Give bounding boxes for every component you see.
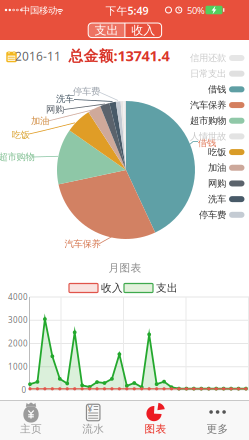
staticText: 停车费 <box>199 209 226 221</box>
staticText: 吃饭 <box>11 129 29 141</box>
staticText: 0 <box>21 385 26 395</box>
staticText: 更多 <box>207 422 229 435</box>
button[interactable]: 支出 <box>124 281 178 294</box>
staticText: 日常支出 <box>190 68 226 79</box>
staticText: 1000 <box>8 361 28 372</box>
button[interactable]: 洗车 <box>154 193 244 205</box>
staticText: 加油 <box>31 115 49 127</box>
button[interactable]: 借钱 <box>154 84 244 95</box>
button[interactable]: 加油 <box>154 162 244 173</box>
staticText: 收入 <box>131 23 155 38</box>
staticText: 收入 <box>101 281 123 294</box>
staticText: 支出 <box>156 281 178 294</box>
button[interactable]: 收入 <box>69 281 123 294</box>
staticText: 主页 <box>20 422 42 435</box>
button[interactable]: 更多 <box>187 400 249 440</box>
staticText: 吃饭 <box>208 146 226 158</box>
button[interactable]: 网购 <box>154 178 244 189</box>
button[interactable]: 人情世故 <box>154 131 244 142</box>
staticText: 网购 <box>46 104 64 115</box>
staticText: 洗车 <box>56 93 74 105</box>
staticText: 月图表 <box>108 261 141 274</box>
staticText: 下午5:49 <box>105 3 148 18</box>
staticText: 2016-11 <box>15 48 61 64</box>
staticText: 信用还款 <box>190 52 226 64</box>
staticText: 加油 <box>208 162 226 173</box>
staticText: 50% <box>187 4 205 17</box>
staticText: 4000 <box>8 292 28 302</box>
staticText: 中国移动 <box>21 5 57 16</box>
button[interactable]: 主页 <box>0 400 62 440</box>
button[interactable]: 汽车保养 <box>154 99 244 111</box>
button[interactable]: 吃饭 <box>154 146 244 158</box>
button[interactable]: 支出 <box>88 23 125 38</box>
staticText: 超市购物 <box>190 115 226 126</box>
staticText: ¥ <box>87 402 92 415</box>
button[interactable]: 收入 <box>125 23 162 38</box>
staticText: 借钱 <box>198 137 216 149</box>
staticText: 支出 <box>95 23 119 38</box>
staticText: 3000 <box>8 315 28 325</box>
button[interactable]: 超市购物 <box>154 115 244 126</box>
button[interactable]: 图表 <box>124 400 186 440</box>
button[interactable]: 日常支出 <box>154 68 244 79</box>
button[interactable]: 信用还款 <box>154 52 244 64</box>
staticText: 2000 <box>8 338 28 349</box>
button[interactable]: ¥ <box>62 400 124 440</box>
staticText: 汽车保养 <box>190 99 226 111</box>
staticText: 停车费 <box>73 86 100 97</box>
staticText: 洗车 <box>208 193 226 205</box>
staticText: 人情世故 <box>190 131 226 142</box>
staticText: 流水 <box>82 422 104 435</box>
staticText: 网购 <box>208 178 226 189</box>
staticText: 图表 <box>144 422 166 435</box>
staticText: 超市购物 <box>0 151 34 163</box>
staticText: 汽车保养 <box>64 238 100 250</box>
button[interactable]: 停车费 <box>154 209 244 221</box>
staticText: 总金额:13741.4 <box>68 46 169 65</box>
staticText: 借钱 <box>208 84 226 95</box>
